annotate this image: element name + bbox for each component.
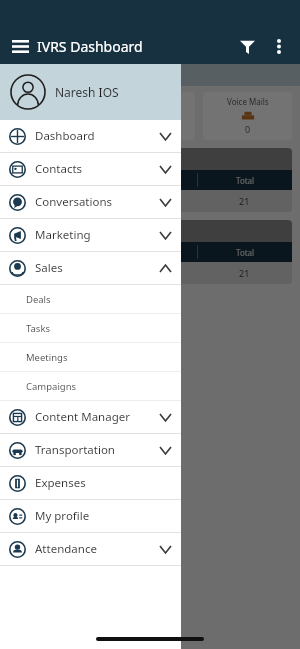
staticText: 0 <box>52 267 58 279</box>
button[interactable]: Filter <box>230 29 264 63</box>
staticText: Answered <box>34 96 72 107</box>
staticText: Total Data <box>16 152 67 166</box>
button[interactable]: Marketing <box>0 219 181 251</box>
staticText: 0 <box>245 123 251 135</box>
staticText: Answered <box>131 175 169 186</box>
staticText: Dashboard <box>35 128 160 144</box>
staticText: 21 <box>239 195 250 207</box>
staticText: Conversations <box>35 194 160 210</box>
button[interactable]: Tasks <box>0 314 181 342</box>
button[interactable]: Conversations <box>0 186 181 218</box>
button[interactable]: Content Manager <box>0 401 181 433</box>
button[interactable]: Campaigns <box>0 372 181 400</box>
staticText: Call Data <box>16 224 61 238</box>
button[interactable]: Deals <box>0 285 181 313</box>
button[interactable]: More options <box>264 31 294 61</box>
staticText: Dialed <box>43 175 67 186</box>
button[interactable]: Open navigation menu <box>12 28 143 64</box>
staticText: Naresh IOS <box>55 84 119 100</box>
staticText: Tasks <box>26 322 51 335</box>
button[interactable]: Transportation <box>0 434 181 466</box>
staticText: Sales <box>35 260 160 276</box>
staticText: Total <box>236 247 255 258</box>
staticText: Contacts <box>35 161 160 177</box>
button[interactable]: Dashboard <box>0 120 181 152</box>
staticText: Total <box>236 175 255 186</box>
button[interactable]: Attendance <box>0 533 181 565</box>
staticText: Attendance <box>35 541 160 557</box>
button[interactable]: Contacts <box>0 153 181 185</box>
staticText: Answered <box>131 247 169 258</box>
staticText: Naresh IOS <box>10 68 69 83</box>
button[interactable]: My profile <box>0 500 181 532</box>
staticText: Campaigns <box>26 380 77 393</box>
staticText: IVRS Dashboard <box>37 37 143 56</box>
button[interactable]: Sales <box>0 252 181 284</box>
button[interactable]: Expenses <box>0 467 181 499</box>
staticText: Transportation <box>35 442 160 458</box>
staticText: Meetings <box>26 351 68 364</box>
staticText: Expenses <box>35 475 171 491</box>
staticText: 0 <box>50 123 56 135</box>
staticText: Deals <box>26 293 51 306</box>
staticText: My profile <box>35 508 171 524</box>
staticText: Marketing <box>35 227 160 243</box>
staticText: Dialed <box>43 247 67 258</box>
button[interactable]: Naresh IOS <box>0 64 181 120</box>
button[interactable]: Meetings <box>0 343 181 371</box>
staticText: Voice Mails <box>227 96 269 107</box>
staticText: 0 <box>52 195 58 207</box>
staticText: Content Manager <box>35 409 160 425</box>
staticText: 21 <box>239 267 250 279</box>
